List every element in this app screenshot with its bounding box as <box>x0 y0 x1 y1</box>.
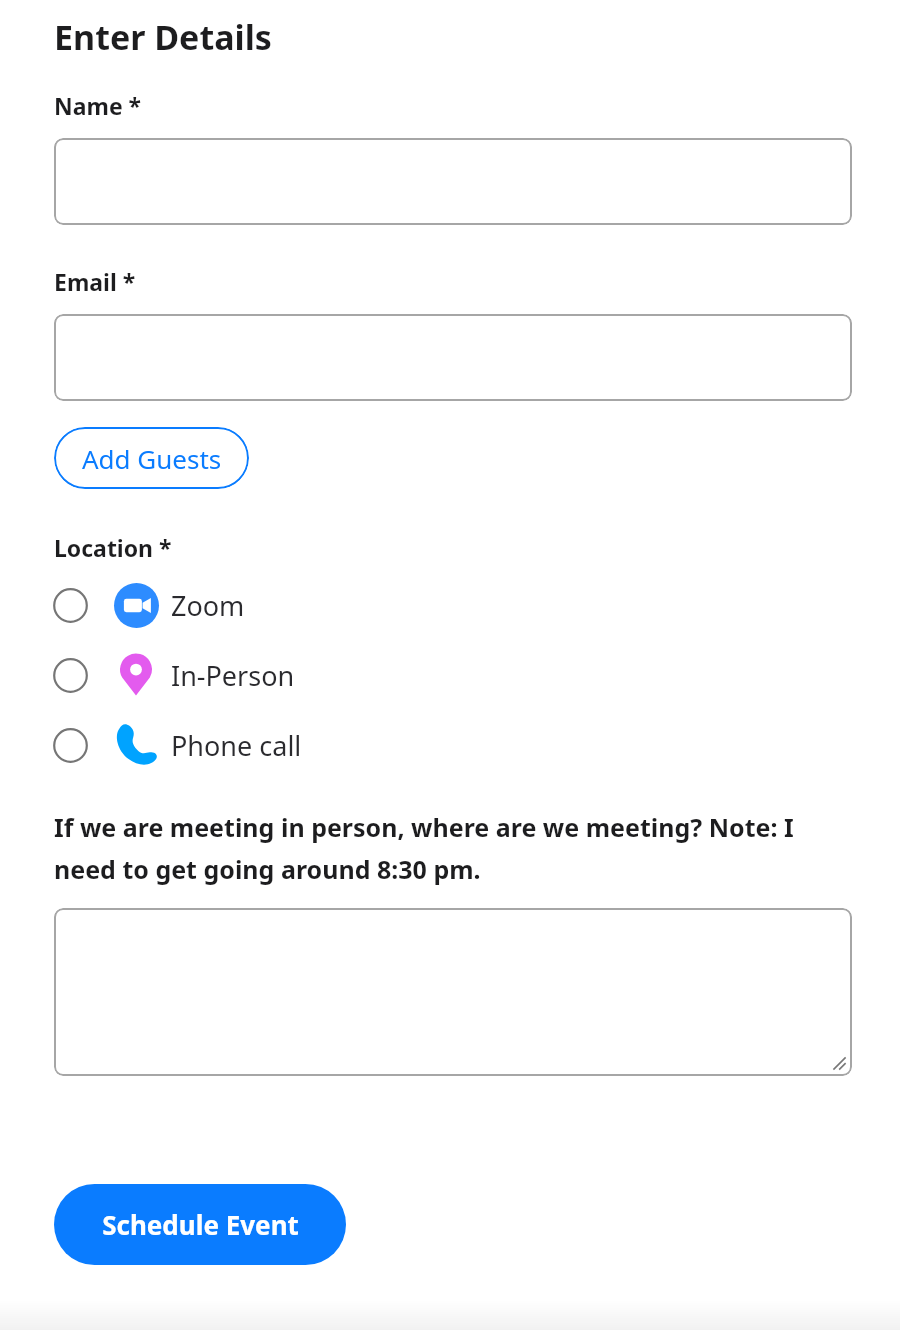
other: Phone call <box>113 722 159 768</box>
staticText: Enter Details <box>54 14 272 60</box>
button[interactable]: Phone call <box>0 718 900 772</box>
button[interactable] <box>54 314 852 401</box>
button[interactable]: Add Guests <box>54 427 249 489</box>
other: In-Person <box>115 654 157 696</box>
staticText: Email * <box>54 266 136 297</box>
staticText: Add Guests <box>82 441 222 476</box>
staticText: In-Person <box>171 657 295 694</box>
staticText: Location * <box>54 532 172 563</box>
staticText: Name * <box>54 90 142 121</box>
button[interactable] <box>54 138 852 225</box>
button[interactable]: Schedule Event <box>54 1184 346 1265</box>
staticText: If we are meeting in person, where are w… <box>54 810 852 886</box>
button[interactable]: In-Person <box>0 648 900 702</box>
other: Zoom <box>114 583 159 628</box>
button[interactable]: Zoom <box>0 578 900 632</box>
staticText: Phone call <box>171 727 302 764</box>
staticText: Zoom <box>171 587 245 624</box>
button[interactable] <box>54 908 852 1076</box>
staticText: Schedule Event <box>102 1207 299 1242</box>
